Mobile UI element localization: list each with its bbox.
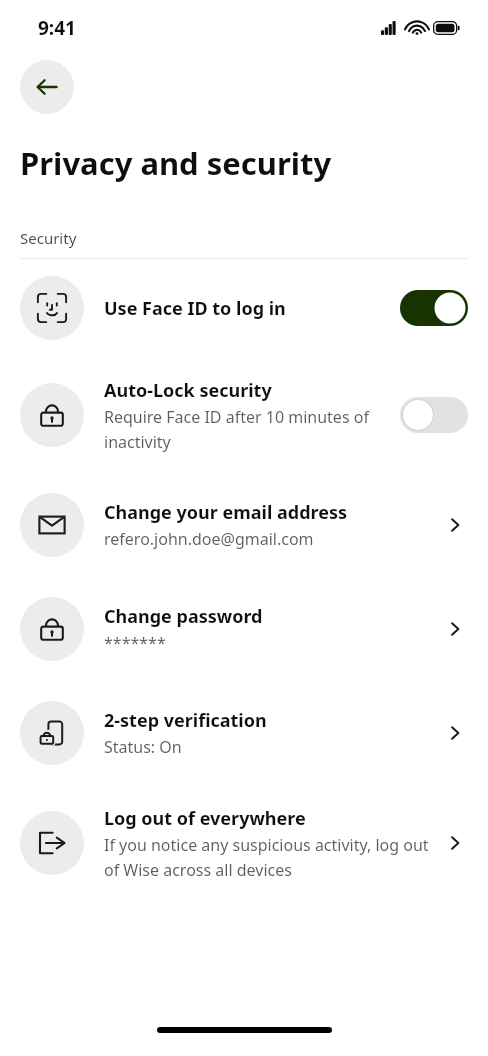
staticText: Use Face ID to log in: [104, 296, 286, 321]
button[interactable]: Log out of everywhere: [0, 785, 488, 901]
staticText: 9:41: [38, 15, 76, 41]
staticText: Log out of everywhere: [104, 806, 306, 831]
button[interactable]: 2-step verification: [0, 681, 488, 785]
staticText: 2-step verification: [104, 708, 267, 733]
staticText: Require Face ID after 10 minutes of inac…: [104, 406, 390, 452]
staticText: Status: On: [104, 736, 182, 758]
staticText: Change your email address: [104, 500, 348, 525]
staticText: Change password: [104, 604, 263, 629]
button[interactable]: Toggle on: [400, 290, 468, 326]
button[interactable]: Back: [20, 60, 74, 114]
button[interactable]: Change password: [0, 577, 488, 681]
button[interactable]: Change your email address: [0, 473, 488, 577]
staticText: Auto-Lock security: [104, 378, 272, 403]
button[interactable]: Use Face ID to log in: [0, 259, 488, 357]
staticText: *******: [104, 632, 166, 654]
staticText: Security: [20, 228, 77, 248]
staticText: If you notice any suspicious activity, l…: [104, 834, 436, 880]
staticText: Privacy and security: [20, 142, 332, 184]
button[interactable]: Toggle off: [400, 397, 468, 433]
button[interactable]: Auto-Lock security: [0, 357, 488, 473]
staticText: refero.john.doe@gmail.com: [104, 528, 314, 550]
